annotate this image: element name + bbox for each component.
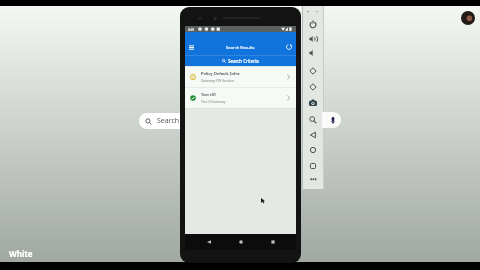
button[interactable]: Volume down <box>307 47 319 59</box>
button[interactable]: Volume up <box>307 33 319 45</box>
button[interactable]: Back <box>202 234 216 250</box>
staticText: 4:01 <box>188 27 195 32</box>
button[interactable]: Search Criteria <box>185 55 296 66</box>
button[interactable]: Recent apps <box>266 234 280 250</box>
button[interactable]: Home <box>307 144 319 156</box>
button[interactable]: Back <box>307 129 319 141</box>
button[interactable]: Home <box>234 234 248 250</box>
staticText: Search Criteria <box>228 58 259 64</box>
staticText: Search <box>157 116 180 126</box>
button[interactable]: Rotate right <box>307 81 319 93</box>
staticText: Tier-0 Gateway <box>201 99 226 104</box>
button[interactable]: Zoom <box>307 114 319 126</box>
button[interactable]: Overview <box>307 160 319 172</box>
button[interactable]: Power <box>307 18 319 30</box>
button[interactable]: Policy_Default_Infra <box>185 67 296 87</box>
button[interactable]: Account <box>461 11 475 25</box>
staticText: Gateway FW Section <box>201 78 235 83</box>
button[interactable]: Take screenshot <box>307 97 319 109</box>
staticText: Test t01 <box>201 92 217 97</box>
button[interactable]: Search <box>139 113 201 129</box>
button[interactable]: Open navigation menu <box>186 42 196 52</box>
button[interactable]: More <box>307 173 319 185</box>
staticText: Search Results <box>226 45 255 51</box>
button[interactable]: Refresh <box>284 42 294 52</box>
staticText: White <box>9 248 33 259</box>
button[interactable]: Rotate left <box>307 65 319 77</box>
staticText: Policy_Default_Infra <box>201 71 240 76</box>
button[interactable]: Microphone <box>322 112 341 128</box>
button[interactable]: Test t01 <box>185 88 296 108</box>
